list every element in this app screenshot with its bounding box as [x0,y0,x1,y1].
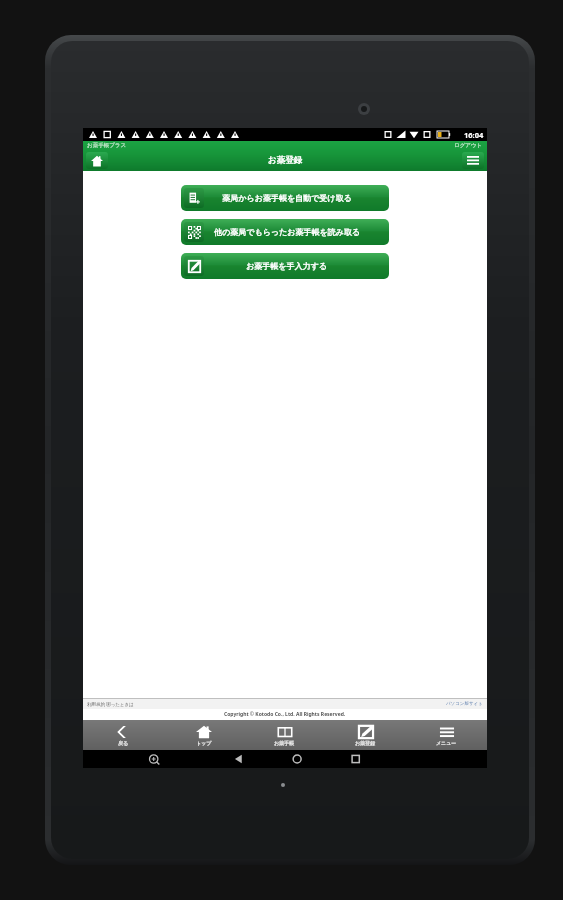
button[interactable]: お薬登録 [325,720,406,750]
staticText: お薬登録 [355,740,376,746]
staticText: お薬手帳を手入力する [246,261,327,271]
button[interactable]: トップ [163,720,244,750]
button[interactable]: ホーム [86,152,108,169]
staticText: お薬登録 [268,155,303,166]
button[interactable]: 他の薬局でもらったお薬手帳を読み取る [181,219,389,245]
staticText: 戻る [118,740,129,746]
button[interactable]: メニュー [406,720,487,750]
staticText: お薬手帳プラス [87,142,127,149]
button[interactable]: お薬手帳 [244,720,325,750]
button[interactable]: パソコン版サイト [446,701,483,707]
button[interactable]: 薬局からお薬手帳を自動で受け取る [181,185,389,211]
staticText: Copyright © Kotodo Co., Ltd. All Rights … [224,711,346,718]
button[interactable]: お薬手帳を手入力する [181,253,389,279]
staticText: ログアウト [454,142,483,149]
staticText: メニュー [436,740,457,746]
staticText: トップ [196,740,212,746]
staticText: お薬手帳 [274,740,295,746]
button[interactable]: 利用規約 困ったときは [87,701,134,707]
button[interactable]: 戻る [83,720,163,750]
button[interactable]: メニュー [462,152,484,169]
staticText: 16:04 [464,130,484,140]
staticText: 他の薬局でもらったお薬手帳を読み取る [214,227,360,237]
staticText: 薬局からお薬手帳を自動で受け取る [222,193,352,203]
